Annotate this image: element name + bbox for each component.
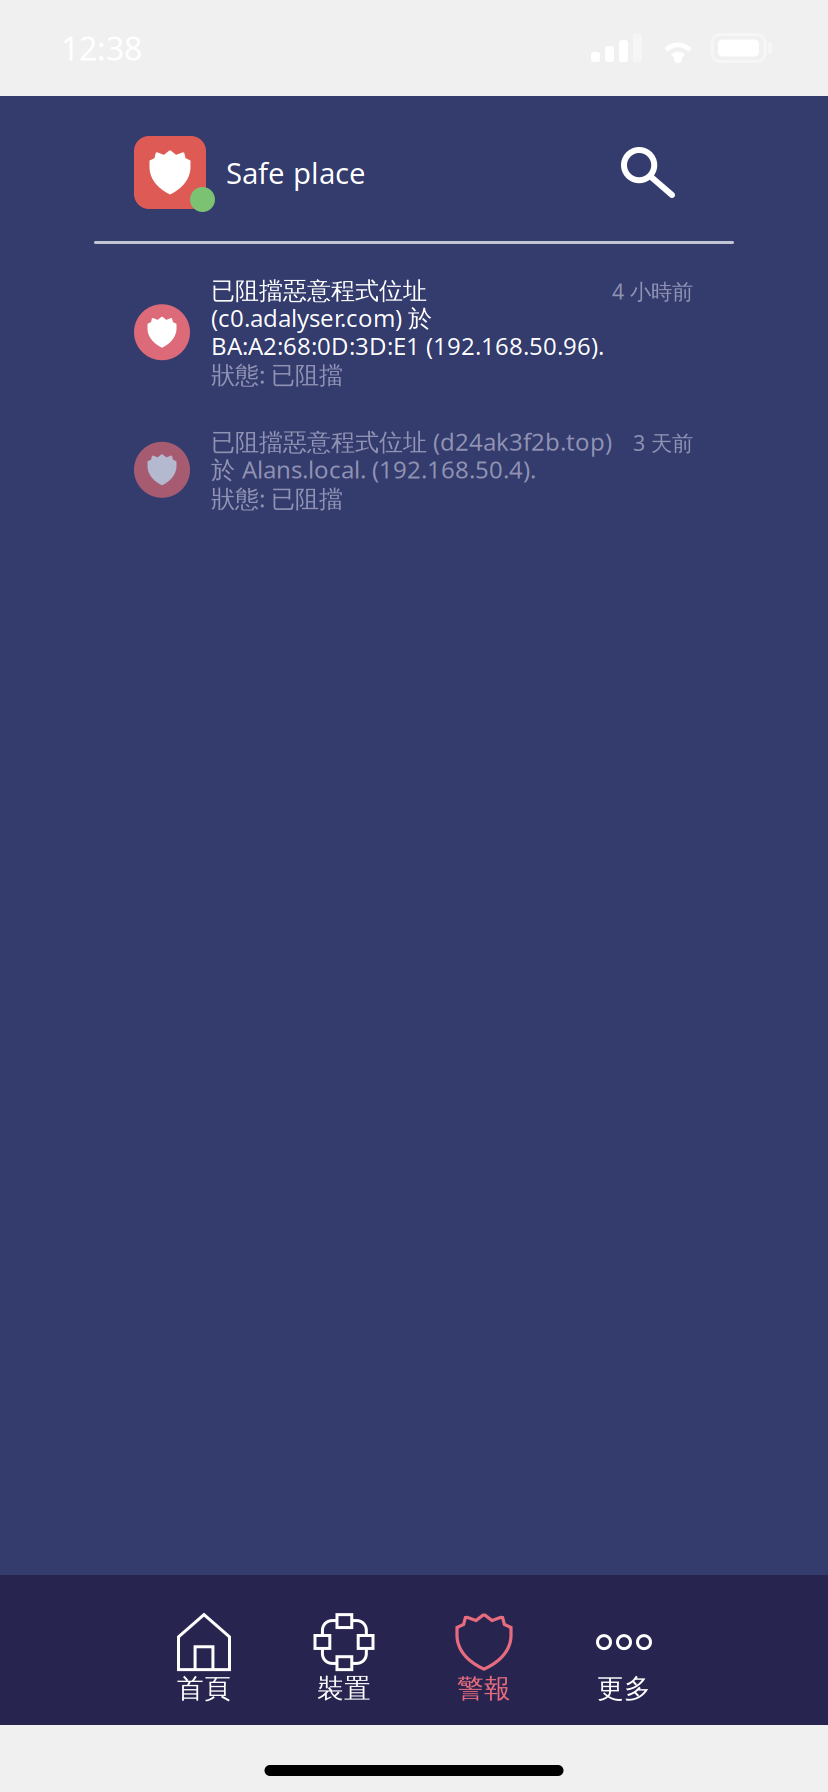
- staticText: 已阻擋惡意程式位址 (d24ak3f2b.top) 於 Alans.local.…: [211, 425, 612, 485]
- staticText: 裝置: [317, 1672, 371, 1705]
- button[interactable]: Search: [612, 138, 684, 207]
- button[interactable]: 更多: [554, 1614, 694, 1705]
- staticText: 4 小時前: [612, 277, 693, 305]
- staticText: 12:38: [61, 27, 142, 69]
- staticText: 狀態: 已阻擋: [211, 359, 343, 390]
- staticText: Safe place: [226, 153, 366, 192]
- button[interactable]: 已阻擋惡意程式位址 (c0.adalyser.com) 於 BA:⁠A2:⁠68…: [0, 244, 828, 390]
- staticText: 已阻擋惡意程式位址 (c0.adalyser.com) 於 BA:⁠A2:⁠68…: [211, 274, 604, 362]
- staticText: 狀態: 已阻擋: [211, 482, 343, 514]
- button[interactable]: 首頁: [134, 1614, 274, 1705]
- staticText: 警報: [457, 1672, 511, 1705]
- button[interactable]: 警報: [414, 1614, 554, 1705]
- button[interactable]: 裝置: [274, 1614, 414, 1705]
- staticText: 更多: [597, 1672, 651, 1705]
- staticText: 首頁: [177, 1672, 231, 1705]
- button[interactable]: 已阻擋惡意程式位址 (d24ak3f2b.top) 於 Alans.local.…: [0, 390, 828, 514]
- staticText: 3 天前: [633, 428, 693, 457]
